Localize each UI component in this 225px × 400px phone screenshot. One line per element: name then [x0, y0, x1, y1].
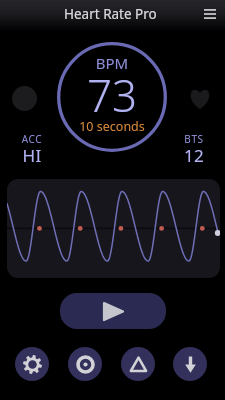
button[interactable]: Beats	[189, 87, 211, 109]
button[interactable]	[57, 42, 167, 152]
staticText: ACC	[7, 132, 57, 146]
staticText: 10 seconds	[57, 118, 167, 135]
staticText: BPM	[57, 53, 167, 73]
button[interactable]: Record	[68, 347, 102, 381]
button[interactable]: Download	[173, 347, 207, 381]
button[interactable]: Menu	[198, 2, 222, 26]
staticText: 12	[169, 144, 219, 167]
staticText: HI	[7, 144, 57, 167]
button[interactable]: Alerts	[121, 347, 155, 381]
button[interactable]: Accuracy	[12, 86, 37, 111]
button[interactable]	[7, 179, 220, 278]
staticText: Heart Rate Pro	[64, 5, 157, 23]
button[interactable]: Settings	[15, 347, 49, 381]
staticText: 73	[57, 65, 167, 125]
button[interactable]: Start	[60, 293, 166, 329]
staticText: BTS	[169, 132, 219, 146]
